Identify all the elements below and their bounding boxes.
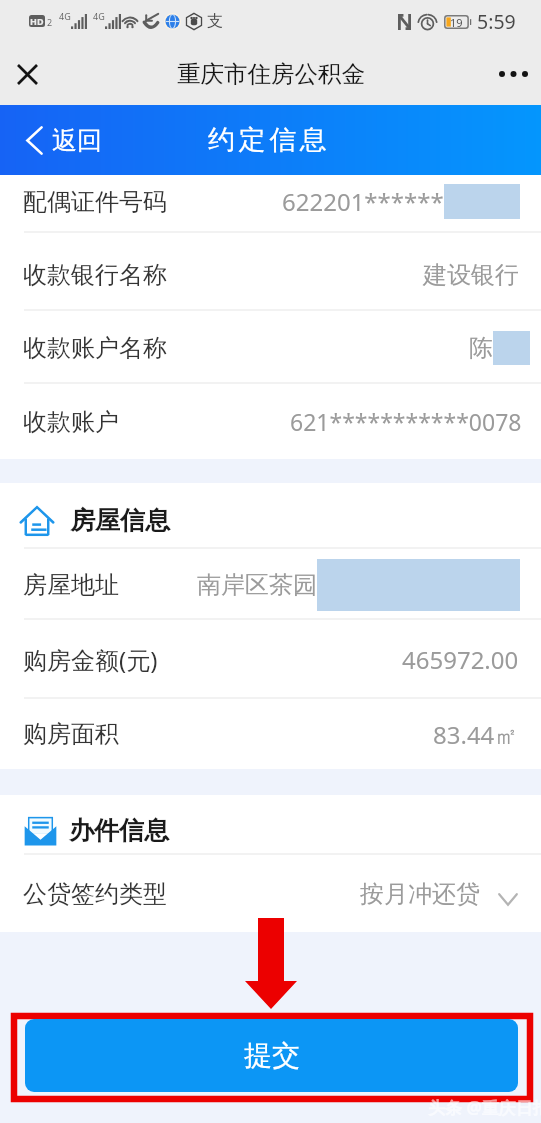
staticText: 重庆市住房公积金 [177,59,365,89]
staticText: 建设银行 [423,260,519,290]
staticText: 按月冲还贷 [360,879,480,909]
staticText: 提交 [244,1038,300,1073]
staticText: 返回 [52,125,102,156]
staticText: 房屋地址 [23,570,119,600]
staticText: 陈 [469,333,493,363]
staticText: 4G [59,10,71,22]
staticText: 南岸区茶园 [197,570,317,600]
button[interactable]: 公贷签约类型 [0,855,541,932]
staticText: 购房面积 [23,719,119,749]
staticText: 621***********0078 [290,406,522,437]
staticText: 收款账户 [23,407,119,437]
staticText: 83.44㎡ [433,718,519,751]
button[interactable]: 购房金额(元) [0,620,541,699]
staticText: 支 [207,11,223,31]
staticText: 公贷签约类型 [23,879,167,909]
button[interactable]: 收款账户名称 [0,311,541,384]
staticText: 购房金额(元) [23,643,158,676]
button[interactable]: 提交 [25,1019,518,1092]
staticText: 465972.00 [402,643,519,676]
staticText: 622201****** [282,185,444,218]
staticText: 收款银行名称 [23,260,167,290]
button[interactable]: 收款银行名称 [0,238,541,311]
button[interactable]: 房屋地址 [0,549,541,620]
staticText: 配偶证件号码 [23,187,167,217]
staticText: 办件信息 [69,815,169,846]
staticText: 5:59 [477,8,516,35]
staticText: HD [30,15,44,27]
staticText: 约定信息 [208,123,331,157]
staticText: 2 [47,16,53,26]
staticText: 房屋信息 [70,505,170,536]
button[interactable]: 配偶证件号码 [0,175,541,233]
staticText: 收款账户名称 [23,333,167,363]
staticText: 头条 @重庆日报 [428,1096,541,1119]
button[interactable]: 购房面积 [0,699,541,769]
button[interactable]: 关闭 [5,52,49,96]
button[interactable]: 更多 [491,52,535,96]
staticText: 4G [93,10,105,22]
button[interactable]: 收款账户 [0,384,541,459]
staticText: 19 [450,15,463,29]
button[interactable]: 返回 [26,125,102,156]
